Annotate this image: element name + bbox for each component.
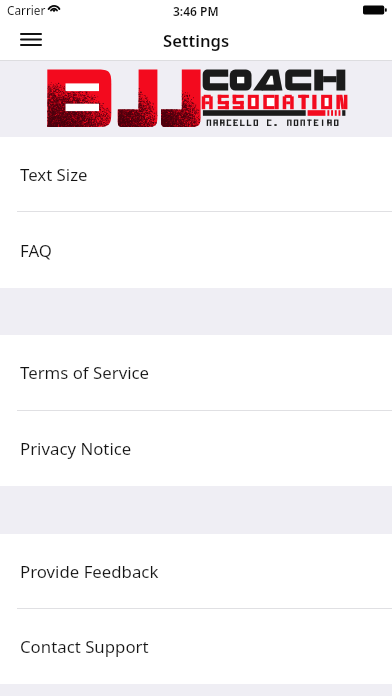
button[interactable]: Terms of Service	[0, 335, 392, 410]
staticText: Provide Feedback	[20, 560, 159, 583]
button[interactable]: Provide Feedback	[0, 534, 392, 608]
staticText: 3:46 PM	[173, 3, 219, 19]
button[interactable]: Text Size	[0, 137, 392, 211]
button[interactable]: Privacy Notice	[0, 411, 392, 486]
staticText: FAQ	[20, 239, 52, 262]
button[interactable]: Contact Support	[0, 609, 392, 684]
staticText: Contact Support	[20, 635, 149, 658]
staticText: Settings	[163, 29, 230, 52]
staticText: Text Size	[20, 163, 88, 186]
staticText: Privacy Notice	[20, 437, 132, 460]
button[interactable]: FAQ	[0, 212, 392, 288]
staticText: Terms of Service	[20, 361, 150, 384]
button[interactable]: Open navigation menu	[14, 26, 48, 53]
staticText: Carrier	[7, 2, 46, 18]
